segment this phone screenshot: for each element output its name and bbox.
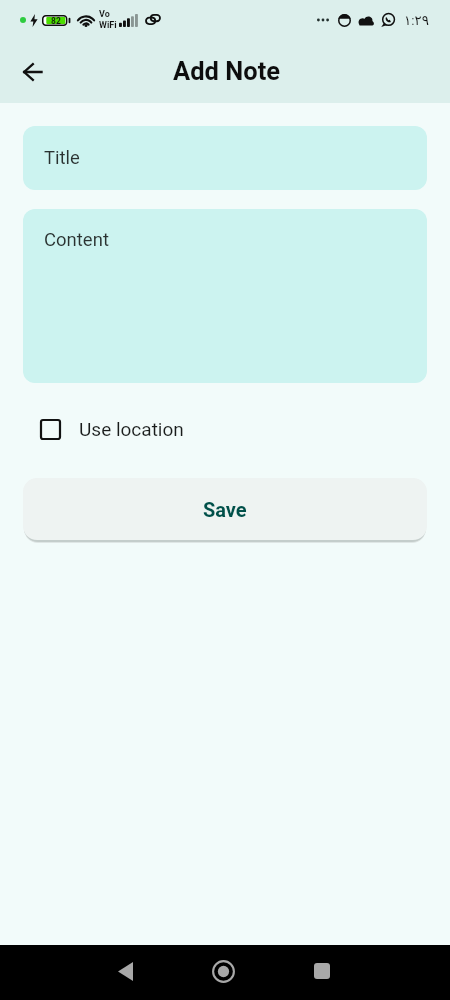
staticText: Save [203,498,247,521]
staticText: Vo [99,9,110,20]
button[interactable]: Back [98,945,152,997]
button[interactable]: Home [196,945,250,997]
button[interactable]: Title [23,126,427,190]
staticText: ١:٢٩ [404,12,430,28]
staticText: WiFi [99,20,117,31]
button[interactable]: Content [23,209,427,383]
staticText: Content [44,229,109,251]
button[interactable]: Save [23,478,427,540]
staticText: 82 [51,16,61,26]
staticText: Add Note [173,56,281,86]
staticText: Use location [79,418,184,440]
staticText: Title [44,147,80,169]
button[interactable]: Use location [32,405,196,453]
button[interactable]: Back [9,49,55,95]
button[interactable]: Recents [295,945,349,997]
